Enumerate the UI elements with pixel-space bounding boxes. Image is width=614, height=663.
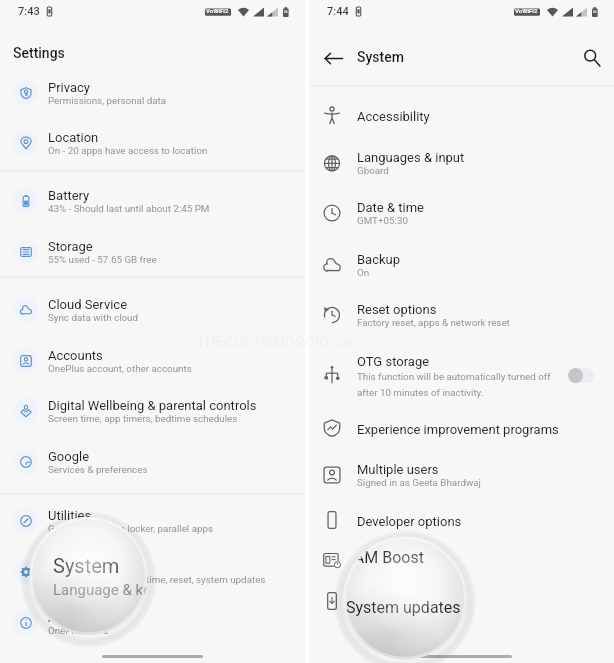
staticText: Game Space, App locker, parallel apps — [48, 523, 214, 534]
button[interactable]: Google — [0, 440, 305, 490]
staticText: Cloud Service — [48, 297, 128, 312]
staticText: Date & time — [357, 200, 424, 215]
staticText: Developer options — [357, 514, 462, 529]
button[interactable]: Accounts — [0, 339, 305, 389]
staticText: Services & preferences — [48, 464, 148, 475]
staticText: System updates — [346, 598, 461, 617]
staticText: Storage — [48, 239, 93, 254]
staticText: System — [357, 49, 404, 65]
staticText: On - 20 apps have access to location — [48, 145, 208, 156]
button[interactable]: Languages & input — [309, 141, 614, 192]
button[interactable]: Experience improvement programs — [309, 411, 614, 452]
button[interactable]: Date & time — [309, 191, 614, 242]
staticText: Language & keyboard, time, reset, system… — [48, 574, 266, 585]
button[interactable]: Search — [580, 46, 604, 70]
staticText: OTG storage — [357, 354, 430, 369]
staticText: Signed in as Geeta Bhardwaj — [357, 477, 481, 488]
button[interactable]: Accessibility — [309, 98, 614, 139]
staticText: Privacy — [48, 80, 90, 95]
button[interactable] — [309, 584, 614, 625]
button[interactable] — [309, 543, 614, 584]
staticText: Sync data with cloud — [48, 312, 139, 323]
button[interactable]: Digital Wellbeing & parental controls — [0, 389, 305, 439]
button[interactable]: Reset options — [309, 293, 614, 344]
staticText: Accounts — [48, 348, 103, 363]
button[interactable]: OTG storage — [309, 344, 614, 410]
button[interactable]: System — [0, 550, 305, 600]
staticText: Location — [48, 130, 99, 145]
button[interactable]: Backup — [309, 243, 614, 294]
button[interactable]: Developer options — [309, 503, 614, 544]
staticText: On — [357, 267, 370, 278]
staticText: Backup — [357, 252, 401, 267]
staticText: Permissions, personal data — [48, 95, 167, 106]
staticText: 55% used - 57.65 GB free — [48, 254, 157, 265]
button[interactable]: Utilities — [0, 499, 305, 549]
button[interactable]: Storage — [0, 230, 305, 280]
staticText: Battery — [48, 188, 90, 203]
staticText: Utilities — [48, 508, 92, 523]
button[interactable]: Location — [0, 121, 305, 171]
staticText: Screen time, app timers, bedtime schedul… — [48, 413, 238, 424]
staticText: GMT+05:30 — [357, 215, 408, 226]
staticText: Multiple users — [357, 462, 439, 477]
staticText: System — [48, 559, 92, 574]
staticText: 7:44 — [327, 5, 349, 18]
staticText: About phone — [48, 610, 122, 625]
staticText: Gboard — [357, 165, 389, 176]
staticText: VoWiFi2 — [206, 7, 229, 14]
button[interactable]: Multiple users — [309, 453, 614, 504]
staticText: OnePlus account, other accounts — [48, 363, 192, 374]
staticText: 7:43 — [18, 5, 40, 18]
staticText: Factory reset, apps & network reset — [357, 317, 510, 328]
staticText: Digital Wellbeing & parental controls — [48, 398, 257, 413]
button[interactable]: Cloud Service — [0, 288, 305, 338]
staticText: Experience improvement programs — [357, 422, 559, 437]
staticText: Settings — [13, 45, 65, 61]
button[interactable]: Back — [321, 46, 345, 70]
staticText: Google — [48, 449, 90, 464]
staticText: 43% - Should last until about 2:45 PM — [48, 203, 210, 214]
button[interactable]: Privacy — [0, 71, 305, 121]
staticText: Language & keyboard — [53, 581, 148, 599]
staticText: RAM Boost — [344, 548, 424, 567]
staticText: Languages & input — [357, 150, 465, 165]
staticText: OnePlus Nord — [48, 625, 109, 636]
button[interactable]: Battery — [0, 179, 305, 229]
staticText: Reset options — [357, 302, 437, 317]
staticText: This function will be automatically turn… — [357, 371, 551, 398]
staticText: Accessibility — [357, 109, 430, 124]
button[interactable]: About phone — [0, 601, 305, 651]
button[interactable]: OTG storage toggle — [561, 360, 601, 390]
staticText: System — [53, 554, 120, 577]
staticText: VoWiFi2 — [515, 7, 538, 14]
